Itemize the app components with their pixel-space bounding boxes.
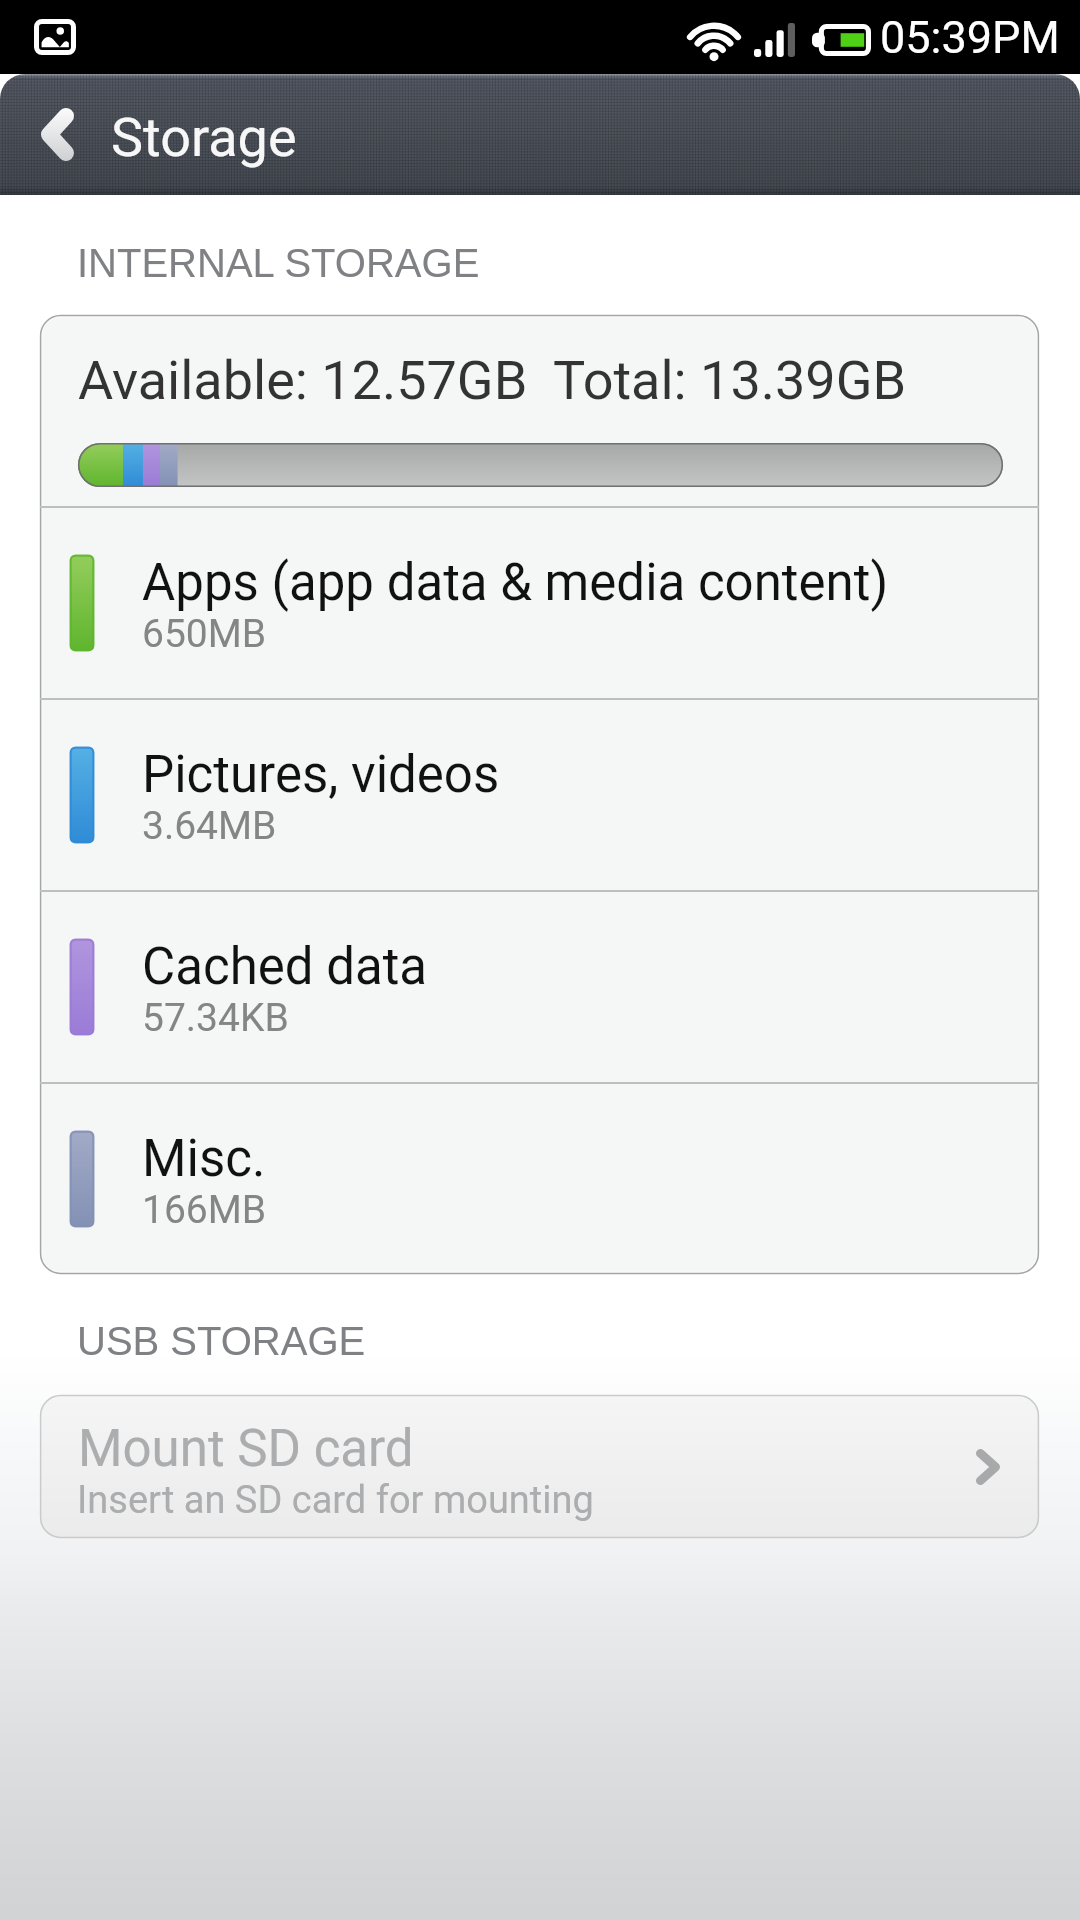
- staticText: Apps (app data & media content): [142, 553, 889, 613]
- button[interactable]: Mount SD card: [40, 1395, 1039, 1538]
- staticText: INTERNAL STORAGE: [77, 241, 480, 286]
- staticText: USB STORAGE: [77, 1319, 366, 1364]
- staticText: Mount SD card: [78, 1419, 414, 1479]
- other: Screenshot: [34, 19, 76, 55]
- staticText: Insert an SD card for mounting: [77, 1478, 594, 1523]
- staticText: Misc.: [142, 1129, 266, 1189]
- staticText: 3.64MB: [142, 803, 277, 849]
- staticText: 650MB: [142, 611, 267, 657]
- button[interactable]: Cached data: [40, 892, 1039, 1082]
- staticText: Pictures, videos: [142, 745, 500, 805]
- staticText: 166MB: [142, 1187, 267, 1233]
- button[interactable]: Pictures, videos: [40, 700, 1039, 890]
- button[interactable]: Misc.: [40, 1084, 1039, 1274]
- staticText: Storage: [111, 106, 297, 169]
- button[interactable]: Back: [0, 74, 108, 195]
- staticText: 05:39PM: [880, 11, 1060, 64]
- staticText: Cached data: [142, 937, 428, 997]
- staticText: Available: 12.57GB Total: 13.39GB: [78, 349, 907, 412]
- staticText: 57.34KB: [142, 995, 289, 1041]
- button[interactable]: Apps (app data & media content): [40, 508, 1039, 698]
